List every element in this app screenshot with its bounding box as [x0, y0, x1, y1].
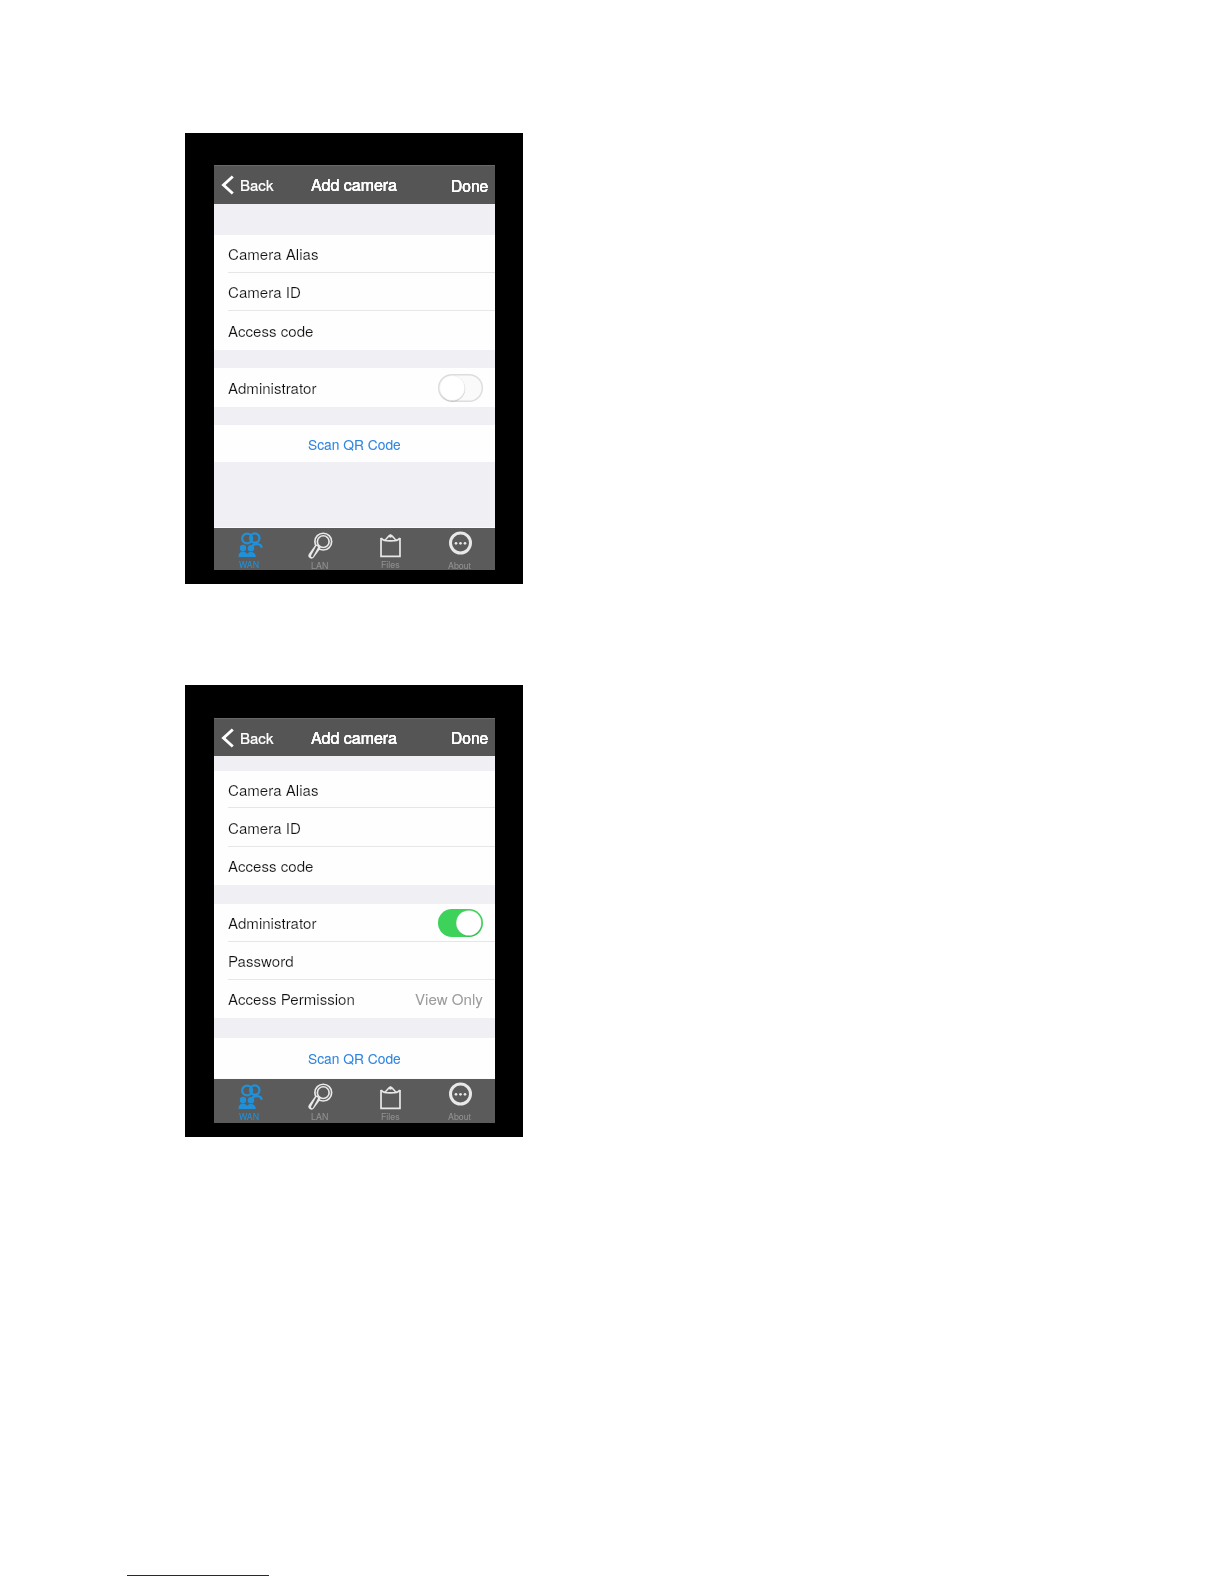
button[interactable]: Administrator off — [438, 374, 483, 402]
button[interactable]: About — [425, 1084, 495, 1123]
button[interactable]: Camera ID — [214, 808, 495, 847]
button[interactable]: WAN — [214, 1084, 285, 1123]
staticText: About — [448, 1110, 472, 1123]
button[interactable]: Camera Alias — [214, 235, 495, 273]
staticText: Administrator — [228, 912, 317, 934]
staticText: Password — [228, 950, 294, 972]
button[interactable]: Files — [355, 1084, 425, 1123]
other: Back — [222, 729, 233, 747]
staticText: Camera Alias — [228, 779, 319, 801]
button[interactable]: LAN — [285, 533, 355, 570]
other: About — [448, 533, 473, 558]
other: WAN — [238, 1085, 262, 1109]
staticText: Access code — [228, 855, 314, 877]
staticText: Camera ID — [228, 281, 301, 303]
staticText: Camera Alias — [228, 243, 319, 265]
button[interactable]: Access code — [214, 847, 495, 885]
staticText: Administrator — [228, 377, 317, 399]
button[interactable]: LAN — [285, 1084, 355, 1123]
button[interactable]: About — [425, 533, 495, 570]
staticText: Done — [451, 174, 489, 196]
staticText: View Only — [415, 988, 483, 1010]
button[interactable]: Administrator — [214, 368, 495, 407]
button[interactable]: WAN — [214, 533, 285, 570]
staticText: WAN — [239, 558, 260, 570]
button[interactable]: Done — [441, 721, 495, 753]
other: About — [448, 1084, 473, 1109]
staticText: Back — [240, 727, 274, 748]
other: WAN — [238, 533, 262, 557]
other: LAN — [308, 1084, 333, 1109]
button[interactable]: Done — [441, 169, 495, 201]
staticText: LAN — [311, 1110, 329, 1123]
button[interactable]: Access Permission — [214, 980, 495, 1018]
staticText: LAN — [311, 559, 329, 570]
button[interactable]: Scan QR Code — [214, 1038, 495, 1078]
staticText: Done — [451, 726, 489, 748]
staticText: Add camera — [311, 726, 398, 749]
staticText: Add camera — [311, 173, 398, 196]
button[interactable]: Access code — [214, 311, 495, 350]
button[interactable]: Administrator on — [438, 909, 483, 937]
staticText: Add camera — [311, 173, 398, 196]
staticText: Done — [451, 726, 489, 748]
staticText: Camera ID — [228, 817, 301, 839]
staticText: Access Permission — [228, 988, 355, 1010]
button[interactable]: Scan QR Code — [214, 425, 495, 462]
staticText: Access code — [228, 320, 314, 342]
button[interactable]: Camera ID — [214, 273, 495, 311]
button[interactable]: Back — [214, 169, 282, 200]
button[interactable]: Back — [214, 722, 282, 753]
other: Files — [380, 1085, 401, 1109]
button[interactable]: Camera Alias — [214, 771, 495, 808]
other: Files — [380, 533, 401, 557]
staticText: Files — [381, 558, 400, 570]
staticText: Scan QR Code — [308, 1048, 401, 1068]
staticText: About — [448, 559, 472, 570]
staticText: Back — [240, 174, 274, 195]
staticText: WAN — [239, 1110, 260, 1123]
button[interactable]: Files — [355, 533, 425, 570]
button[interactable]: Password — [214, 942, 495, 980]
other: LAN — [308, 533, 333, 558]
other: Back — [222, 176, 233, 194]
staticText: Scan QR Code — [308, 434, 401, 454]
staticText: Add camera — [311, 726, 398, 749]
staticText: Done — [451, 174, 489, 196]
button[interactable]: Administrator — [214, 904, 495, 942]
staticText: Files — [381, 1110, 400, 1123]
